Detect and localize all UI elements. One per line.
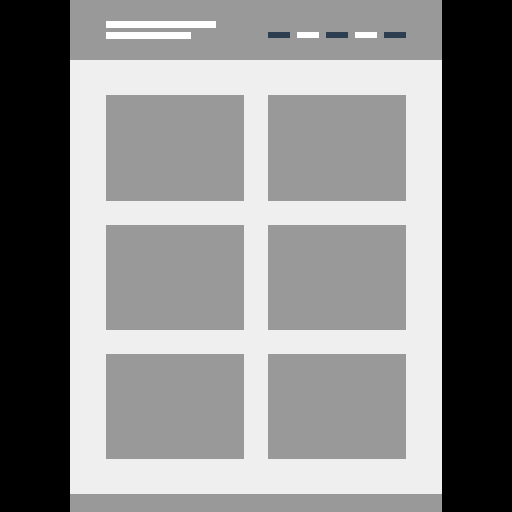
button[interactable]: Gallery bbox=[106, 21, 216, 39]
